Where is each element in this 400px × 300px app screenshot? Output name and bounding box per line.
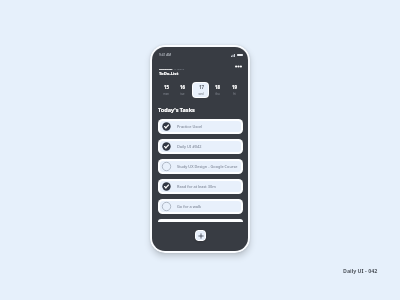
staticText: 17 xyxy=(199,84,204,90)
button[interactable]: Go for a walk xyxy=(160,201,241,212)
staticText: 15 xyxy=(164,84,169,90)
staticText: wednesday xyxy=(159,67,173,70)
button[interactable]: Practice Uxcel xyxy=(160,121,241,132)
staticText: Today's Tasks xyxy=(158,106,195,113)
staticText: fri xyxy=(233,92,236,96)
button[interactable]: 19 xyxy=(226,82,243,98)
staticText: 17 march xyxy=(173,67,185,70)
button[interactable]: Daily UI #042 xyxy=(160,141,241,152)
staticText: ToDo-List xyxy=(159,71,179,77)
button[interactable]: 16 xyxy=(174,82,191,98)
staticText: wed xyxy=(198,92,204,96)
button[interactable]: Add task xyxy=(196,231,205,240)
button[interactable]: 15 xyxy=(157,82,174,98)
staticText: mon xyxy=(163,92,169,96)
button[interactable]: 17 xyxy=(193,83,208,97)
staticText: 18 xyxy=(215,84,220,90)
staticText: Daily UI #042 xyxy=(177,144,202,149)
staticText: Read for at least 30m xyxy=(177,184,216,189)
button[interactable]: Read for at least 30m xyxy=(160,181,241,192)
button[interactable]: 18 xyxy=(209,82,226,98)
staticText: Go for a walk xyxy=(177,204,202,209)
staticText: tue xyxy=(180,92,185,96)
staticText: 16 xyxy=(180,84,185,90)
staticText: Practice Uxcel xyxy=(177,124,203,129)
staticText: 19 xyxy=(232,84,237,90)
staticText: thu xyxy=(215,92,220,96)
staticText: Study UX Design - Google Course xyxy=(177,164,238,169)
staticText: 9:41 AM xyxy=(159,53,172,57)
staticText: Daily UI - 042 xyxy=(343,267,378,274)
button[interactable]: More options xyxy=(232,60,245,71)
button[interactable]: Study UX Design - Google Course xyxy=(160,161,241,172)
